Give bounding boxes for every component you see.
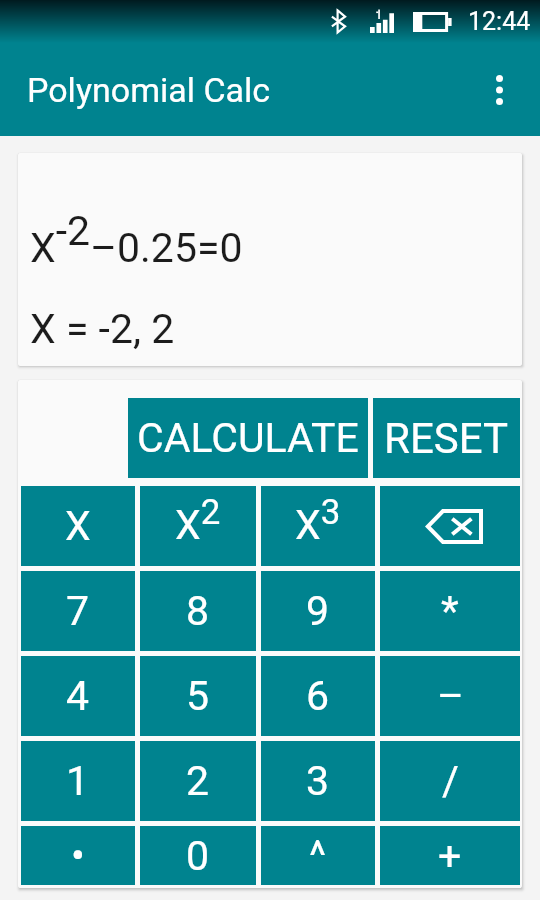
button[interactable]: 1 <box>21 741 135 821</box>
button[interactable]: 7 <box>21 571 135 651</box>
staticText: 5 <box>186 672 210 720</box>
staticText: 4 <box>66 672 90 720</box>
staticText: • <box>71 832 85 880</box>
staticText: 7 <box>66 587 90 635</box>
staticText: 0 <box>186 832 210 880</box>
staticText: 9 <box>306 587 330 635</box>
button[interactable]: CALCULATE <box>128 398 368 478</box>
button[interactable]: * <box>380 571 520 651</box>
staticText: X <box>65 502 91 550</box>
staticText: Polynomial Calc <box>27 70 271 110</box>
button[interactable]: X3 <box>261 486 375 566</box>
staticText: – <box>437 672 464 720</box>
button[interactable]: RESET <box>373 398 520 478</box>
button[interactable]: 5 <box>140 656 256 736</box>
staticText: 6 <box>306 672 330 720</box>
button[interactable]: 0 <box>140 826 256 885</box>
button[interactable]: 6 <box>261 656 375 736</box>
staticText: CALCULATE <box>137 414 359 462</box>
staticText: 8 <box>186 587 210 635</box>
staticText: X2 <box>175 492 221 549</box>
button[interactable]: 4 <box>21 656 135 736</box>
staticText: + <box>438 832 462 880</box>
button[interactable]: • <box>21 826 135 885</box>
button[interactable]: + <box>380 826 520 885</box>
staticText: ^ <box>309 832 327 880</box>
button[interactable]: X <box>21 486 135 566</box>
button[interactable]: – <box>380 656 520 736</box>
staticText: X = -2, 2 <box>30 305 175 353</box>
staticText: RESET <box>384 414 509 463</box>
staticText: X-2–0.25=0 <box>30 207 243 272</box>
staticText: 3 <box>306 757 330 805</box>
button[interactable]: 8 <box>140 571 256 651</box>
button[interactable]: 2 <box>140 741 256 821</box>
staticText: 2 <box>186 757 210 805</box>
button[interactable]: X2 <box>140 486 256 566</box>
staticText: 1 <box>66 757 90 805</box>
staticText: X3 <box>295 492 341 549</box>
button[interactable]: 3 <box>261 741 375 821</box>
button[interactable]: 9 <box>261 571 375 651</box>
staticText: 12:44 <box>468 7 531 36</box>
staticText: / <box>442 757 459 805</box>
button[interactable]: More options <box>473 64 525 116</box>
button[interactable]: Backspace <box>380 486 520 566</box>
button[interactable]: / <box>380 741 520 821</box>
staticText: * <box>441 587 459 635</box>
button[interactable]: ^ <box>261 826 375 885</box>
